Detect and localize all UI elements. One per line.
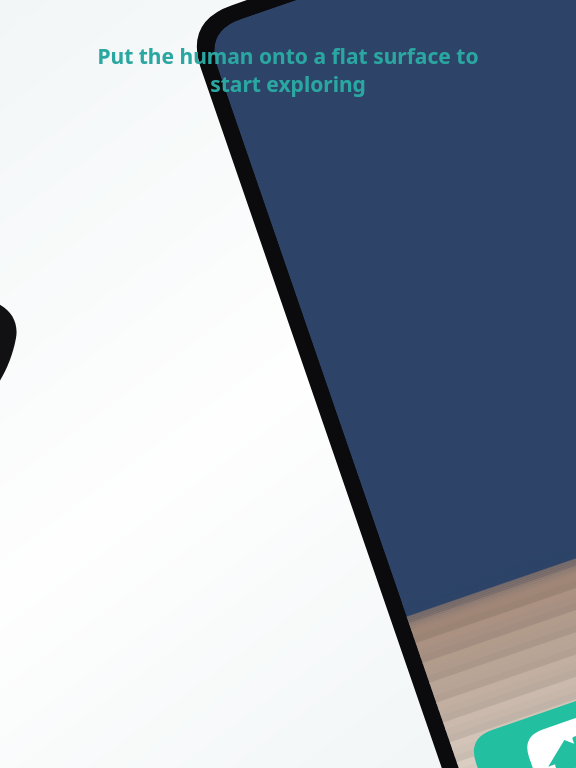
staticText: Put the human onto a flat surface to sta… (56, 42, 520, 98)
button[interactable]: Home (347, 521, 393, 544)
button[interactable]: Put the human onto a flat surface to sta… (0, 42, 576, 98)
